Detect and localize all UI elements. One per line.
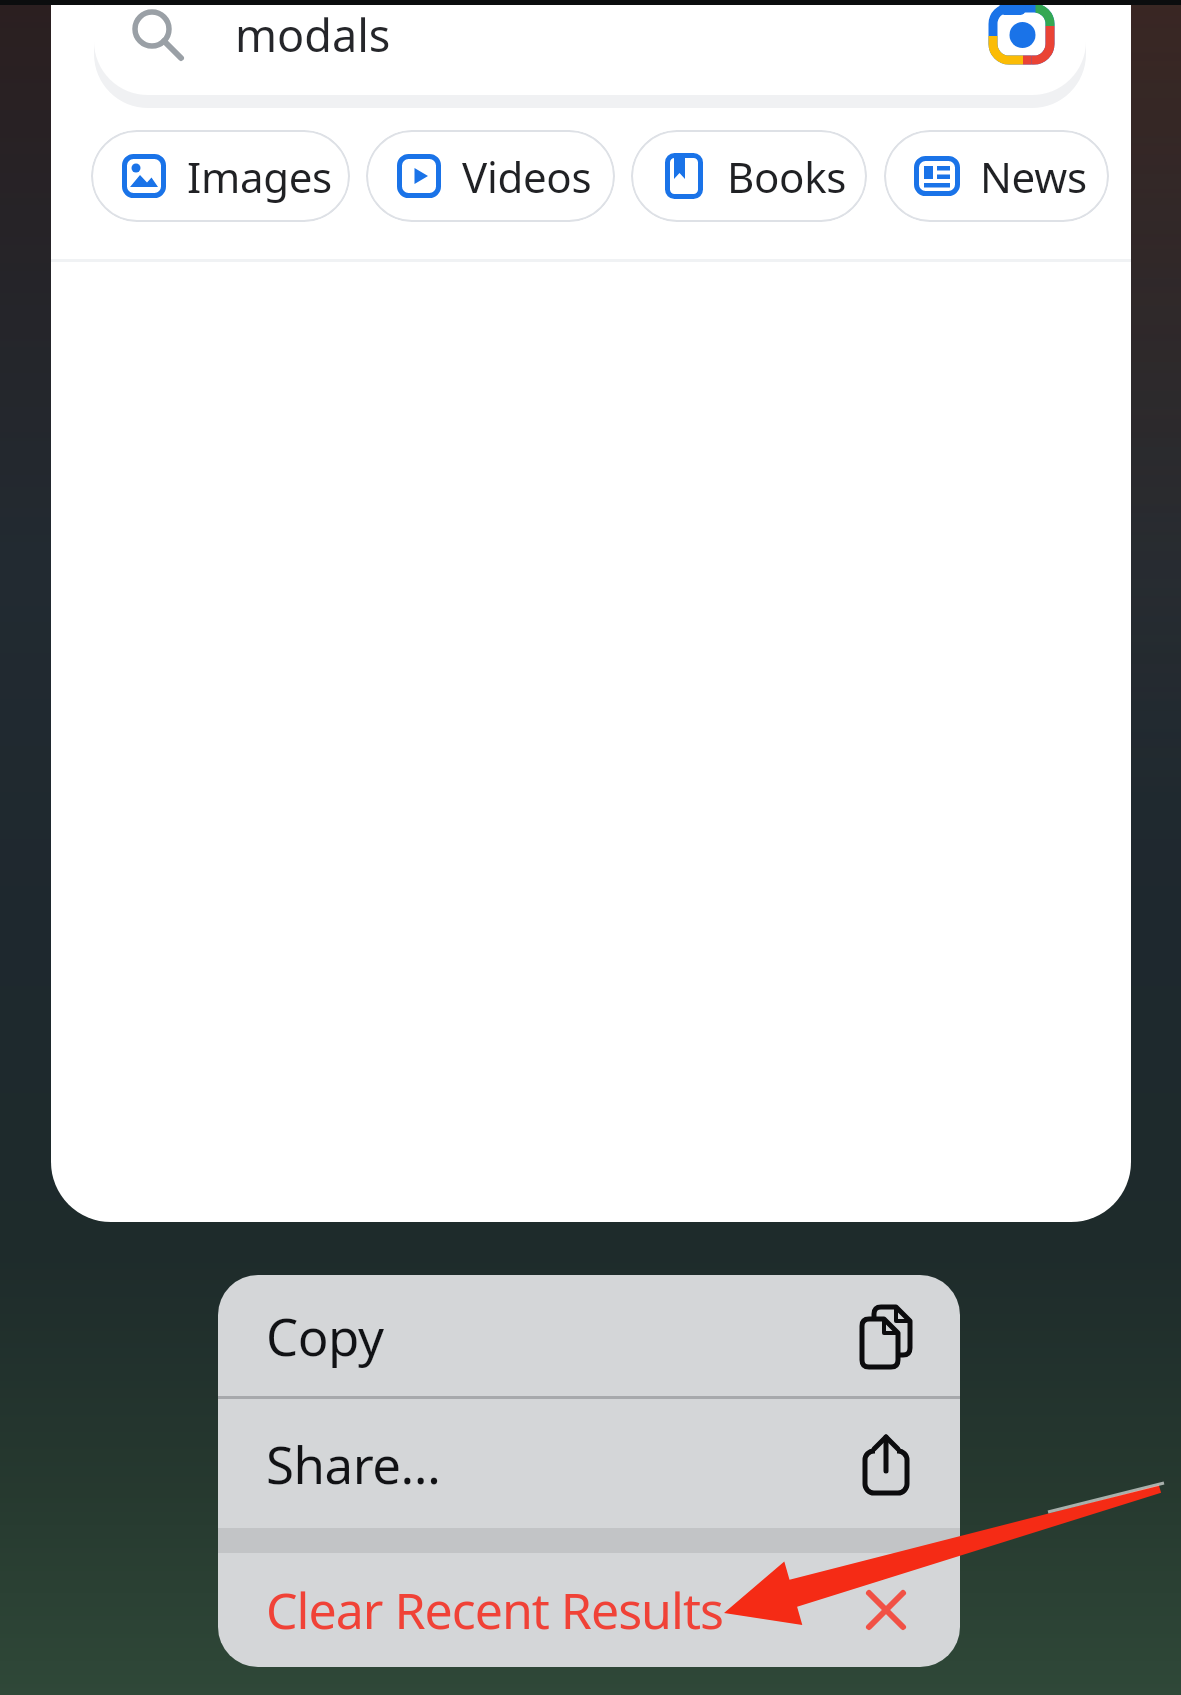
button[interactable]: Copy — [218, 1275, 960, 1396]
staticText: Images — [187, 148, 332, 205]
staticText: modals — [235, 4, 391, 65]
staticText: News — [980, 148, 1087, 205]
staticText: Clear Recent Results — [266, 1576, 723, 1644]
staticText: Share… — [266, 1429, 441, 1498]
button[interactable]: Share… — [218, 1399, 960, 1528]
button[interactable] — [979, 0, 1069, 78]
button[interactable]: Images — [91, 130, 350, 222]
button[interactable]: Books — [631, 130, 867, 222]
staticText: Copy — [266, 1301, 384, 1370]
staticText: Books — [727, 148, 847, 205]
button[interactable]: Videos — [366, 130, 615, 222]
button[interactable]: News — [884, 130, 1109, 222]
button[interactable]: Clear Recent Results — [218, 1553, 960, 1667]
staticText: Videos — [462, 148, 592, 205]
button[interactable] — [94, 0, 1086, 95]
